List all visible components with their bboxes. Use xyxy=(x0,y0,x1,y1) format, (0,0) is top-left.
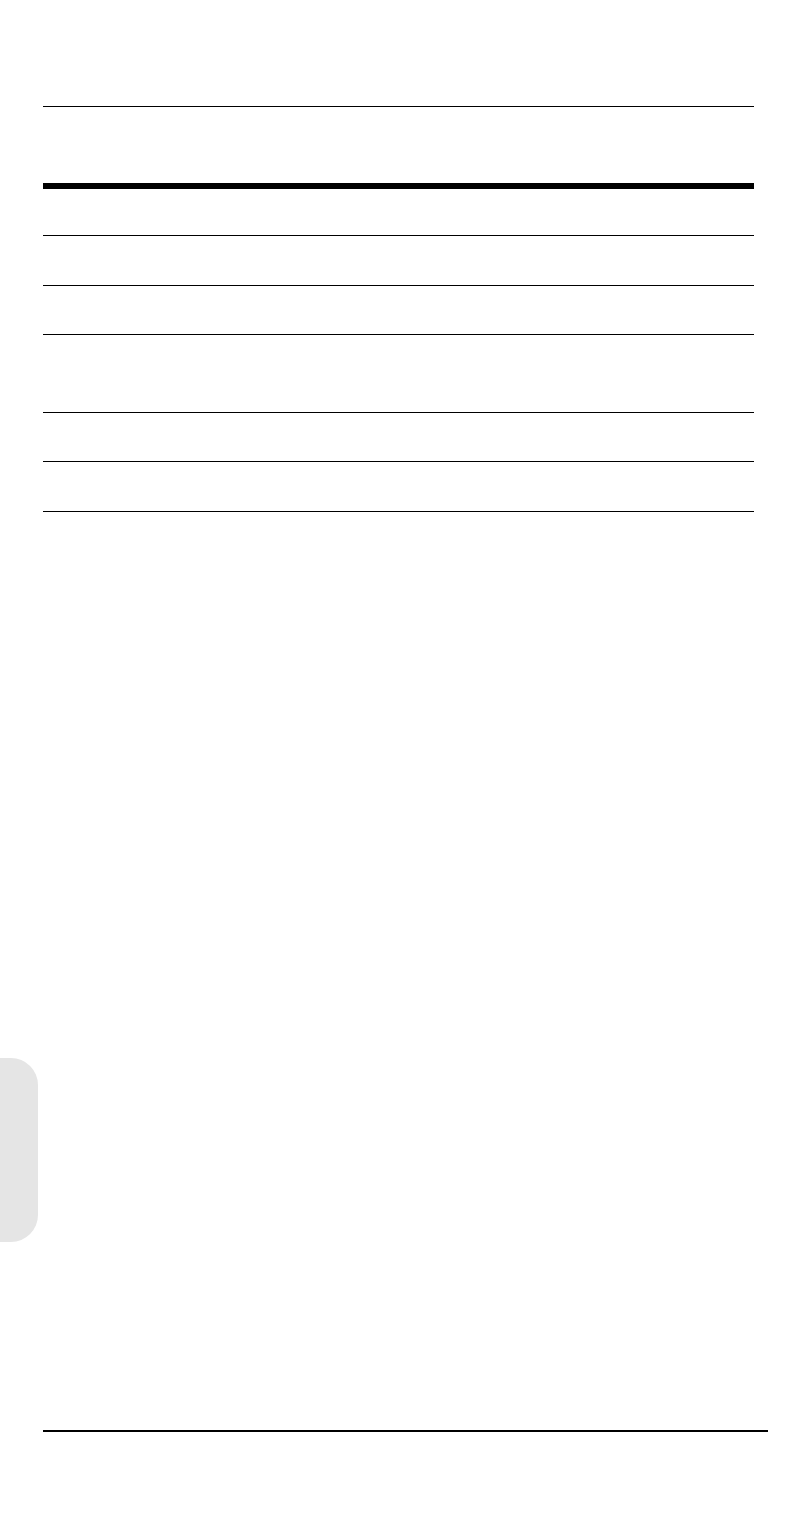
button[interactable]: Row 3 xyxy=(43,286,754,335)
button[interactable]: Row 5 xyxy=(43,413,754,462)
button[interactable]: Row 4 xyxy=(43,335,754,413)
button[interactable]: Row 1 xyxy=(43,189,754,236)
button[interactable]: Row 6 xyxy=(43,462,754,512)
button[interactable]: Row 2 xyxy=(43,236,754,286)
button[interactable]: Header xyxy=(43,0,754,107)
other: Scroll position indicator xyxy=(0,1058,38,1242)
button[interactable]: Section heading xyxy=(43,107,754,189)
